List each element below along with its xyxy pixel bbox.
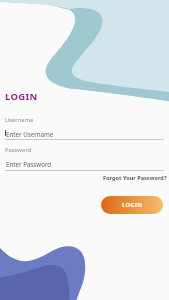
staticText: Enter Username [6, 130, 54, 138]
staticText: LOGIN [5, 90, 38, 103]
staticText: Forgot Your Password? [103, 174, 167, 182]
staticText: Enter Password [6, 160, 52, 168]
button[interactable]: LOGIN [101, 196, 163, 214]
staticText: Username [5, 116, 34, 124]
staticText: Password [5, 146, 32, 154]
button[interactable]: Forgot Your Password? [102, 173, 168, 183]
staticText: LOGIN [122, 201, 143, 209]
